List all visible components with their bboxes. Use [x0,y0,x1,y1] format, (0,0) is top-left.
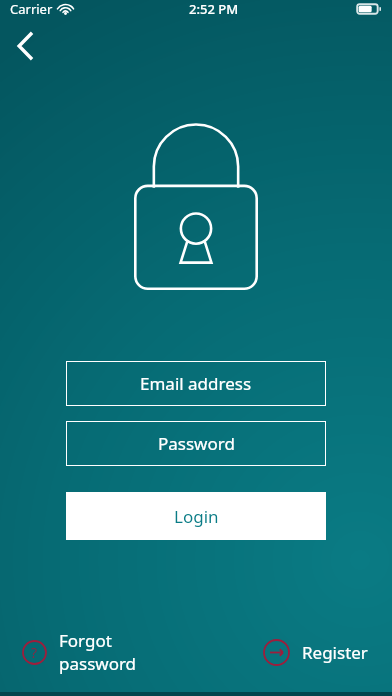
button[interactable]: Back [2,24,48,68]
staticText: Password [158,432,235,455]
button[interactable]: Password [66,421,326,466]
staticText: Register [302,641,368,664]
staticText: 2:52 PM [189,0,239,18]
button[interactable]: Email address [66,361,326,406]
button[interactable]: Register [263,639,368,666]
button[interactable]: Login [66,492,326,540]
other: Forgot password [22,640,47,665]
other: Register [263,639,290,666]
button[interactable]: Forgot password [22,629,143,675]
staticText: Email address [140,372,252,395]
staticText: ? [31,643,38,662]
staticText: Login [174,505,219,528]
staticText: Carrier [10,0,53,18]
staticText: Forgot password [59,629,137,675]
